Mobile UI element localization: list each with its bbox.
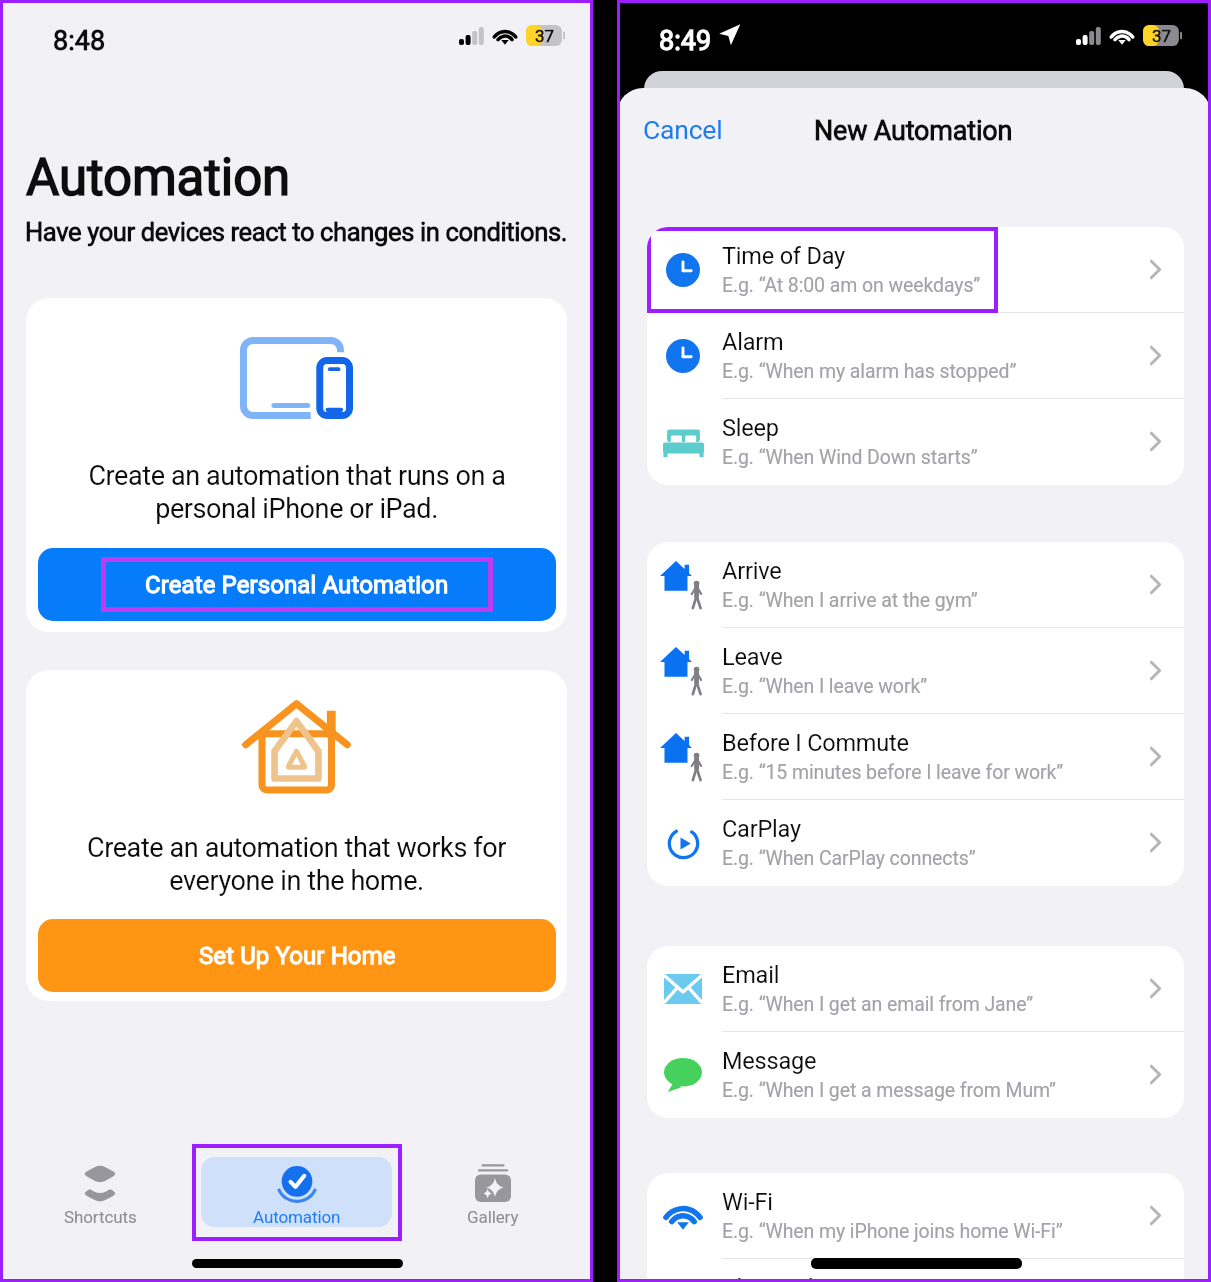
staticText: E.g. “When CarPlay connects” [722, 847, 976, 870]
staticText: Bluetooth [722, 1274, 821, 1282]
button[interactable]: CarPlay [647, 800, 1184, 886]
button[interactable]: Shortcuts [20, 1203, 180, 1231]
button[interactable]: Set Up Your Home [38, 919, 556, 992]
button[interactable]: Automation [217, 1203, 377, 1231]
staticText: Email [722, 961, 780, 989]
staticText: E.g. “When I arrive at the gym” [722, 589, 978, 612]
staticText: E.g. “When my iPhone joins home Wi-Fi” [722, 1220, 1063, 1243]
button[interactable]: Wi-Fi [647, 1173, 1184, 1259]
staticText: Have your devices react to changes in co… [25, 217, 568, 247]
staticText: E.g. “When I get an email from Jane” [722, 993, 1034, 1016]
staticText: Automation [253, 1207, 341, 1227]
button[interactable]: Message [647, 1032, 1184, 1118]
staticText: E.g. “15 minutes before I leave for work… [722, 761, 1064, 784]
staticText: Wi-Fi [722, 1188, 773, 1216]
staticText: Create an automation that works for [87, 832, 506, 864]
button[interactable]: Time of Day [647, 227, 1184, 313]
staticText: E.g. “When Wind Down starts” [722, 446, 978, 469]
staticText: Automation [26, 148, 291, 208]
staticText: E.g. “When I get a message from Mum” [722, 1079, 1056, 1102]
button[interactable]: Gallery [413, 1203, 573, 1231]
staticText: Create Personal Automation [145, 571, 449, 599]
button[interactable]: Sleep [647, 399, 1184, 485]
staticText: personal iPhone or iPad. [155, 493, 438, 525]
button[interactable]: Leave [647, 628, 1184, 714]
staticText: 8:49 [659, 25, 712, 57]
staticText: CarPlay [722, 815, 801, 843]
button[interactable]: Before I Commute [647, 714, 1184, 800]
button[interactable]: Email [647, 946, 1184, 1032]
staticText: 37 [535, 26, 555, 46]
staticText: Gallery [467, 1207, 519, 1227]
staticText: Leave [722, 643, 783, 671]
staticText: E.g. “When my alarm has stopped” [722, 360, 1017, 383]
button[interactable]: Shortcuts [81, 1162, 118, 1204]
button[interactable]: Cancel [643, 114, 723, 145]
button[interactable] [201, 1157, 392, 1227]
staticText: 37 [1152, 26, 1172, 46]
staticText: Alarm [722, 328, 784, 356]
button[interactable]: Alarm [647, 313, 1184, 399]
staticText: 8:48 [53, 25, 106, 57]
staticText: Set Up Your Home [199, 942, 396, 970]
staticText: Message [722, 1047, 817, 1075]
staticText: Sleep [722, 414, 779, 442]
staticText: Create an automation that runs on a [88, 460, 506, 492]
button[interactable]: Gallery [475, 1162, 511, 1202]
staticText: Before I Commute [722, 729, 909, 757]
staticText: E.g. “When I leave work” [722, 675, 928, 698]
button[interactable]: Bluetooth [647, 1259, 1184, 1282]
staticText: Time of Day [722, 242, 845, 270]
staticText: E.g. “At 8:00 am on weekdays” [722, 274, 981, 297]
staticText: Arrive [722, 557, 782, 585]
staticText: New Automation [814, 115, 1013, 147]
staticText: everyone in the home. [169, 865, 424, 897]
button[interactable]: Arrive [647, 542, 1184, 628]
staticText: Shortcuts [64, 1207, 137, 1227]
button[interactable]: Create Personal Automation [38, 548, 556, 621]
